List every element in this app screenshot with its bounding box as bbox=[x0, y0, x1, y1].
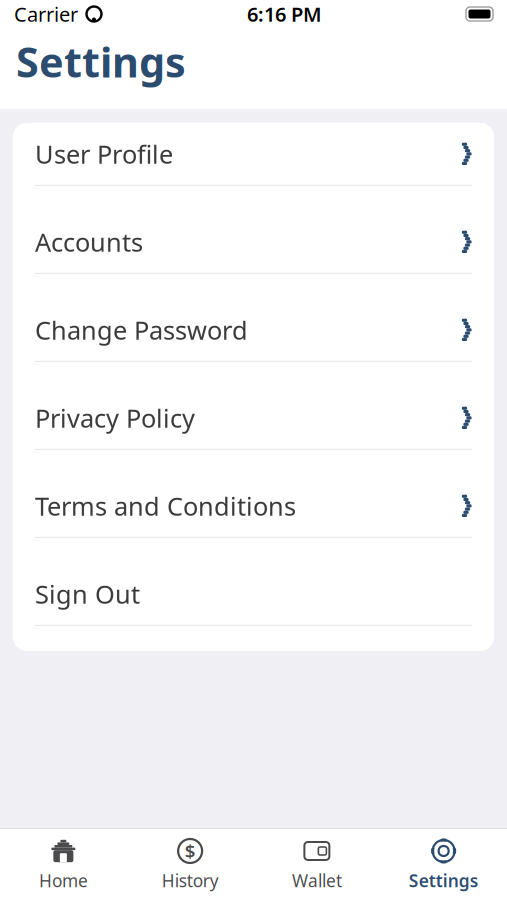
staticText: Privacy Policy bbox=[35, 401, 195, 435]
staticText: Sign Out bbox=[35, 577, 140, 611]
staticText: Carrier bbox=[14, 1, 78, 27]
staticText: Settings bbox=[16, 34, 186, 89]
staticText: Settings bbox=[409, 869, 479, 892]
staticText: $ bbox=[185, 839, 196, 863]
button[interactable]: Home bbox=[0, 829, 127, 900]
staticText: 6:16 PM bbox=[247, 1, 322, 27]
staticText: User Profile bbox=[35, 137, 173, 171]
staticText: Accounts bbox=[35, 225, 143, 259]
staticText: History bbox=[162, 869, 219, 892]
button[interactable]: Change Password bbox=[13, 299, 494, 387]
staticText: Terms and Conditions bbox=[35, 489, 296, 523]
button[interactable]: Wallet bbox=[253, 829, 380, 900]
button[interactable]: Accounts bbox=[13, 211, 494, 299]
button[interactable]: Privacy Policy bbox=[13, 387, 494, 475]
staticText: Wallet bbox=[292, 869, 342, 892]
button[interactable]: $ bbox=[127, 829, 254, 900]
button[interactable]: User Profile bbox=[13, 123, 494, 211]
button[interactable]: Terms and Conditions bbox=[13, 475, 494, 563]
staticText: Change Password bbox=[35, 313, 248, 347]
button[interactable]: Sign Out bbox=[13, 563, 494, 651]
button[interactable]: Settings bbox=[380, 829, 507, 900]
staticText: Home bbox=[39, 869, 88, 892]
